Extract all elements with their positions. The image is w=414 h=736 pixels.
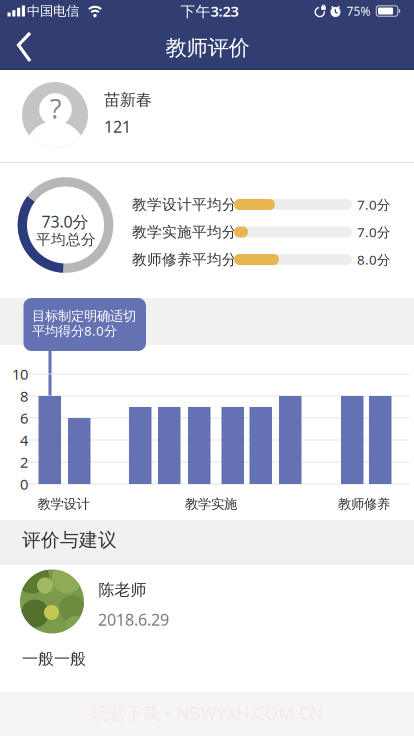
staticText: 73.0分 [41,211,88,232]
button[interactable] [369,396,391,484]
staticText: 0 [20,474,28,494]
staticText: 8.0分 [357,251,390,268]
staticText: 75% [346,3,370,19]
staticText: 苗新春 [104,90,152,110]
staticText: 教学实施平均分 [132,223,237,241]
staticText: 2018.6.29 [98,609,169,630]
staticText: 评价与建议 [22,528,117,551]
staticText: 下午3:23 [180,1,238,21]
button[interactable] [341,396,363,484]
button[interactable] [279,396,301,484]
staticText: 中国电信 [27,3,79,19]
button[interactable]: 陈老师 [0,565,414,692]
staticText: 4 [20,430,28,450]
staticText: ? [50,91,62,126]
staticText: 7.0分 [357,196,390,213]
staticText: 平均总分 [36,230,96,248]
staticText: 教师修养 [338,496,390,512]
staticText: 2 [20,452,28,472]
staticText: 8 [20,386,28,406]
button[interactable] [0,28,48,70]
staticText: 一般一般 [22,649,86,669]
staticText: 目标制定明确适切 [32,308,136,324]
staticText: 教学设计 [38,496,90,512]
staticText: 10 [12,364,28,384]
staticText: 6 [20,408,28,428]
staticText: 教学实施 [185,496,237,512]
staticText: 陈老师 [98,580,146,600]
staticText: 121 [104,116,131,137]
staticText: 教学设计平均分 [132,195,237,213]
staticText: 教师修养平均分 [132,250,237,268]
staticText: 平均得分8.0分 [32,322,117,339]
staticText: 7.0分 [357,223,390,241]
staticText: 教师评价 [165,35,249,61]
staticText: 玩意下载 • NBWYXH.COM.CN [91,701,322,724]
button[interactable] [38,396,61,484]
button[interactable] [129,407,151,484]
